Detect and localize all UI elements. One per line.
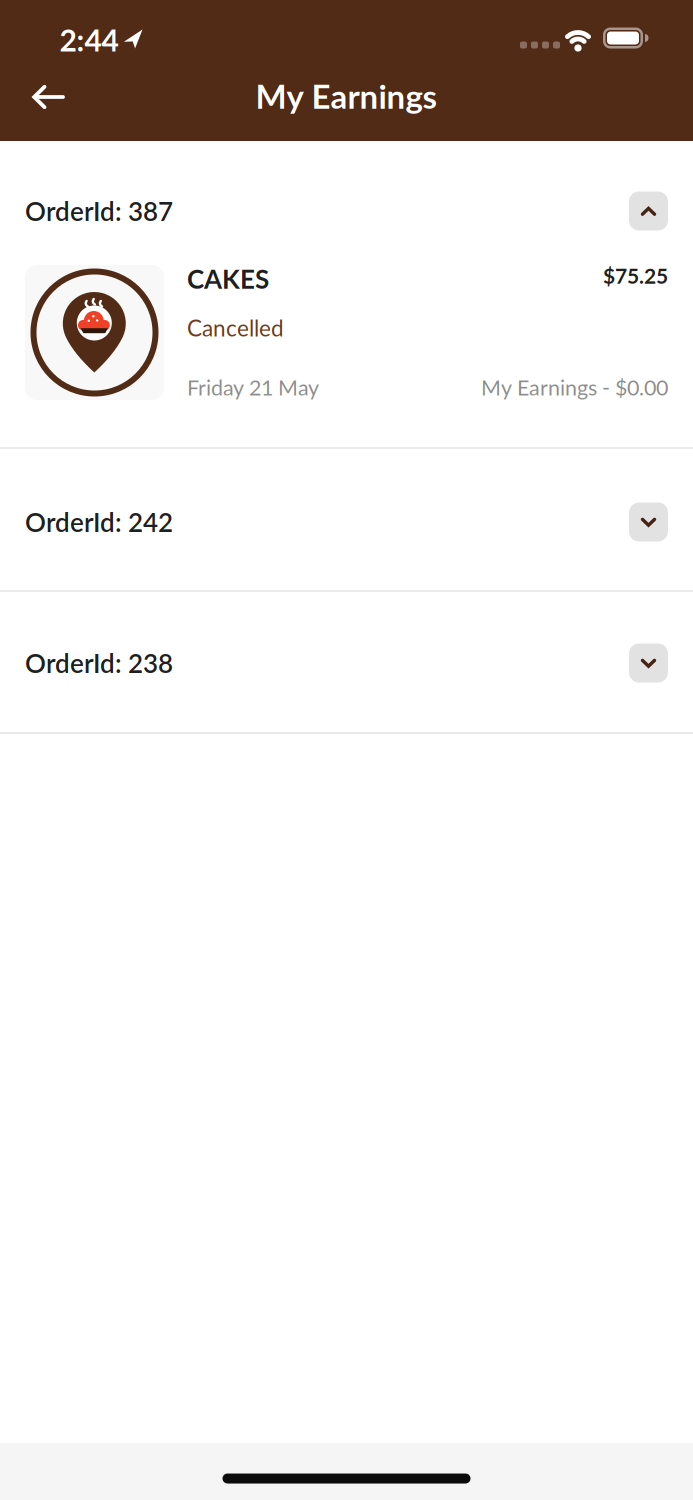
staticText: My Earnings - $0.00 — [481, 374, 668, 400]
staticText: 2:44 — [59, 22, 118, 58]
staticText: OrderId: 238 — [25, 647, 173, 679]
staticText: CAKES — [187, 263, 269, 294]
staticText: Friday 21 May — [187, 374, 319, 400]
staticText: Cancelled — [187, 314, 284, 341]
staticText: OrderId: 387 — [25, 195, 173, 227]
staticText: $75.25 — [603, 263, 668, 288]
button[interactable]: Back — [32, 84, 64, 110]
button[interactable]: OrderId: 387 — [0, 191, 693, 231]
staticText: My Earnings — [255, 76, 437, 116]
button[interactable]: OrderId: 242 — [0, 449, 693, 590]
staticText: OrderId: 242 — [25, 506, 173, 538]
button[interactable]: OrderId: 238 — [0, 592, 693, 732]
